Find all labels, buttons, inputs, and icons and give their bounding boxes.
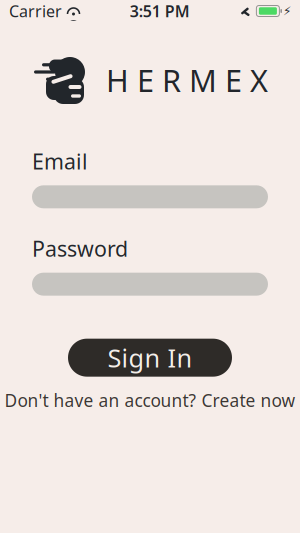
staticText: Carrier [9, 0, 62, 22]
button[interactable]: Sign In [68, 339, 232, 377]
button[interactable]: Don't have an account? Create now [4, 389, 295, 412]
staticText: Sign In [107, 341, 192, 374]
staticText: H E R M E X [106, 60, 268, 100]
staticText: Don't have an account? Create now [4, 389, 295, 412]
staticText: Email [32, 147, 88, 175]
staticText: ⚡︎ [283, 4, 291, 18]
staticText: Password [32, 234, 128, 263]
staticText: 3:51 PM [130, 0, 190, 22]
